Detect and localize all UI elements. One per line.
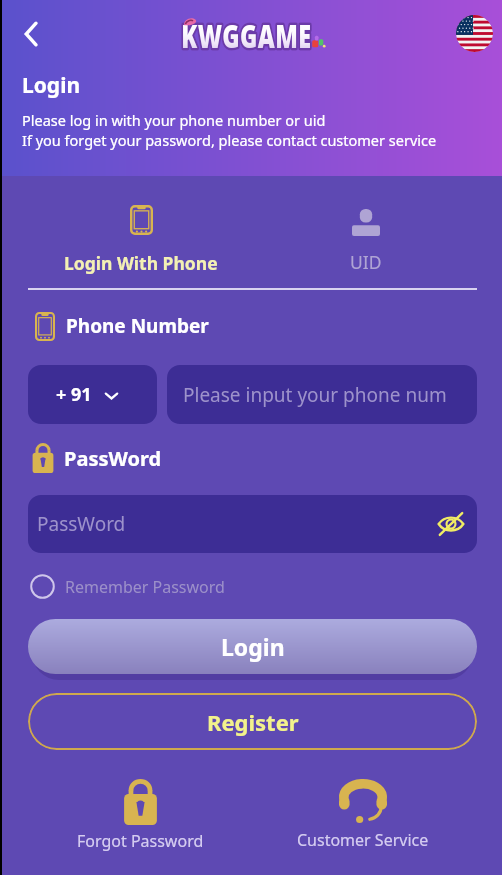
button[interactable]: Register [28, 693, 477, 750]
button[interactable]: Please input your phone num [167, 365, 477, 424]
button[interactable]: + 91 [28, 365, 157, 424]
staticText: UID [350, 250, 382, 274]
staticText: Please input your phone num [183, 382, 447, 408]
button[interactable]: Remember Password [30, 574, 225, 599]
staticText: Login [22, 71, 81, 100]
staticText: Phone Number [66, 313, 209, 339]
staticText: Register [207, 707, 299, 737]
staticText: Remember Password [65, 576, 225, 598]
staticText: PassWord [64, 445, 162, 472]
staticText: PassWord [37, 511, 126, 537]
button[interactable]: Login With Phone [28, 205, 253, 295]
staticText: + 91 [56, 382, 92, 407]
staticText: KWGGAME [181, 13, 312, 56]
button[interactable]: UID [253, 205, 478, 295]
button[interactable]: Forgot Password [70, 779, 211, 852]
staticText: Please log in with your phone number or … [22, 110, 326, 130]
button[interactable]: Show password [433, 506, 469, 542]
staticText: Login With Phone [64, 251, 218, 275]
button[interactable]: PassWord [28, 495, 477, 553]
button[interactable]: Language [456, 15, 493, 52]
staticText: Forgot Password [77, 830, 204, 852]
staticText: KWGGAME [181, 13, 312, 56]
staticText: If you forget your password, please cont… [22, 130, 437, 150]
staticText: Customer Service [297, 829, 429, 851]
button[interactable]: Login [28, 619, 477, 674]
button[interactable]: Back [9, 12, 53, 56]
button[interactable]: Customer Service [290, 779, 436, 851]
staticText: Login [221, 631, 285, 662]
